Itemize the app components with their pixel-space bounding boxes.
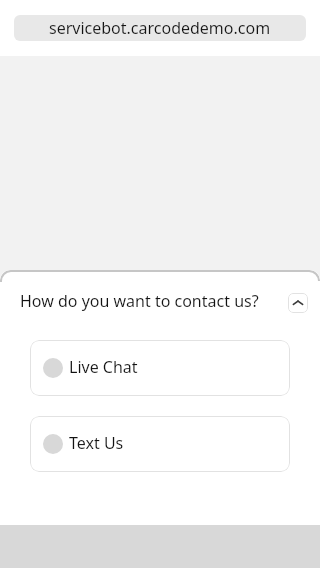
staticText: Live Chat bbox=[69, 356, 138, 378]
staticText: How do you want to contact us? bbox=[20, 290, 288, 312]
button[interactable]: Collapse bbox=[288, 293, 308, 313]
staticText: Text Us bbox=[69, 432, 124, 454]
staticText: servicebot.carcodedemo.com bbox=[49, 17, 271, 39]
button[interactable]: Text Us bbox=[30, 416, 290, 472]
button[interactable]: Live Chat bbox=[30, 340, 290, 396]
button[interactable]: servicebot.carcodedemo.com bbox=[14, 15, 306, 41]
